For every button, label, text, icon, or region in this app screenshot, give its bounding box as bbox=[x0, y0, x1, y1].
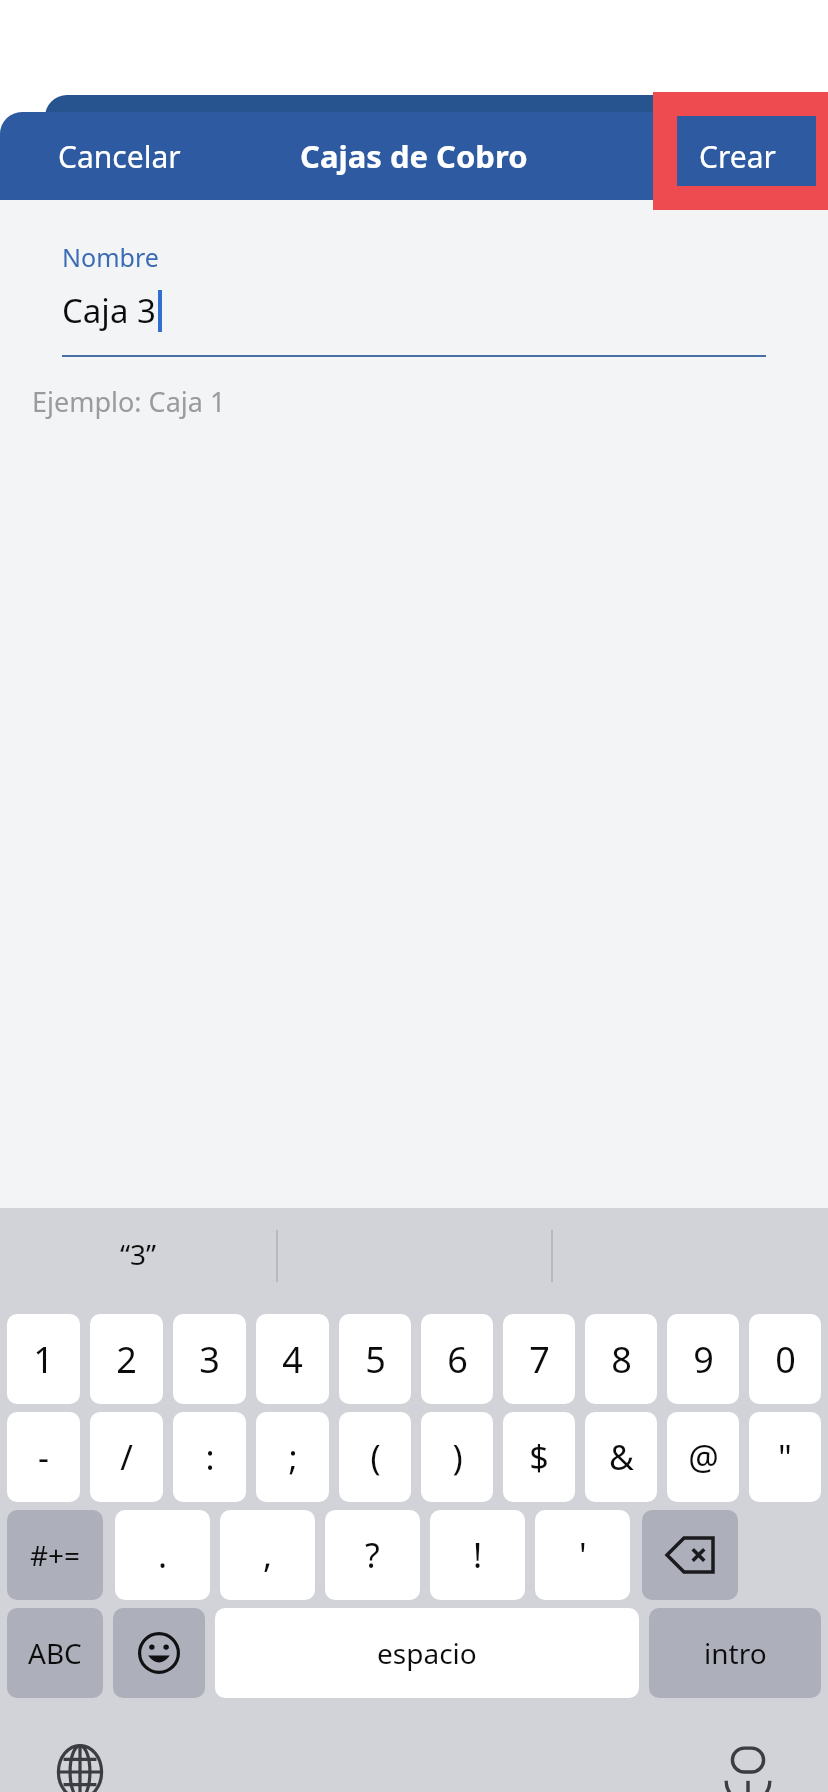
staticText: 1 bbox=[33, 1335, 54, 1384]
button[interactable]: Crear bbox=[687, 120, 788, 193]
staticText: 3 bbox=[199, 1335, 220, 1384]
staticText: 8 bbox=[611, 1335, 632, 1384]
button[interactable]: - bbox=[7, 1412, 80, 1502]
button[interactable]: 1 bbox=[7, 1314, 80, 1404]
staticText: espacio bbox=[377, 1634, 477, 1672]
button[interactable]: ( bbox=[339, 1412, 411, 1502]
button[interactable]: ' bbox=[535, 1510, 630, 1600]
button[interactable]: ) bbox=[421, 1412, 493, 1502]
button[interactable]: 2 bbox=[90, 1314, 163, 1404]
button[interactable]: $ bbox=[503, 1412, 575, 1502]
staticText: $ bbox=[529, 1434, 549, 1480]
button[interactable]: 7 bbox=[503, 1314, 575, 1404]
staticText: 5 bbox=[365, 1335, 386, 1384]
staticText: - bbox=[38, 1434, 49, 1480]
button[interactable]: 5 bbox=[339, 1314, 411, 1404]
staticText: ? bbox=[365, 1532, 380, 1578]
button[interactable]: . bbox=[115, 1510, 210, 1600]
staticText: Nombre bbox=[62, 240, 159, 274]
button[interactable]: : bbox=[173, 1412, 246, 1502]
button[interactable]: #+= bbox=[7, 1510, 103, 1600]
staticText: " bbox=[778, 1434, 792, 1480]
staticText: / bbox=[120, 1434, 133, 1480]
button[interactable]: Backspace bbox=[642, 1510, 738, 1600]
button[interactable]: 4 bbox=[256, 1314, 329, 1404]
staticText: : bbox=[205, 1434, 215, 1480]
staticText: ABC bbox=[28, 1634, 82, 1672]
staticText: 0 bbox=[775, 1335, 796, 1384]
staticText: 9 bbox=[693, 1335, 714, 1384]
button[interactable]: 9 bbox=[667, 1314, 739, 1404]
button[interactable]: espacio bbox=[215, 1608, 639, 1698]
button[interactable]: & bbox=[585, 1412, 657, 1502]
button[interactable]: Dictation bbox=[712, 1736, 784, 1792]
button[interactable]: ? bbox=[325, 1510, 420, 1600]
button[interactable]: Cancelar bbox=[20, 120, 219, 193]
button[interactable]: Emoji bbox=[113, 1608, 205, 1698]
button[interactable]: Caja 3 bbox=[62, 288, 162, 333]
staticText: . bbox=[158, 1532, 168, 1578]
button[interactable]: 8 bbox=[585, 1314, 657, 1404]
staticText: 6 bbox=[447, 1335, 468, 1384]
button[interactable]: intro bbox=[649, 1608, 821, 1698]
staticText: & bbox=[609, 1434, 634, 1480]
button[interactable]: @ bbox=[667, 1412, 739, 1502]
button[interactable]: 6 bbox=[421, 1314, 493, 1404]
button[interactable]: 0 bbox=[749, 1314, 821, 1404]
staticText: ' bbox=[579, 1532, 587, 1578]
staticText: ( bbox=[370, 1434, 381, 1480]
staticText: Crear bbox=[699, 136, 776, 177]
button[interactable]: , bbox=[220, 1510, 315, 1600]
staticText: Caja 3 bbox=[62, 288, 156, 333]
staticText: intro bbox=[704, 1634, 767, 1672]
staticText: , bbox=[263, 1532, 273, 1578]
staticText: Ejemplo: Caja 1 bbox=[32, 383, 226, 420]
staticText: 2 bbox=[116, 1335, 137, 1384]
button[interactable]: Change keyboard language bbox=[44, 1736, 116, 1792]
button[interactable]: ABC bbox=[7, 1608, 103, 1698]
button[interactable]: “3” bbox=[120, 1235, 157, 1273]
staticText: ! bbox=[473, 1532, 483, 1578]
staticText: @ bbox=[688, 1434, 719, 1480]
staticText: 7 bbox=[529, 1335, 550, 1384]
button[interactable]: " bbox=[749, 1412, 821, 1502]
button[interactable]: 3 bbox=[173, 1314, 246, 1404]
button[interactable]: / bbox=[90, 1412, 163, 1502]
staticText: ; bbox=[288, 1434, 298, 1480]
staticText: ) bbox=[452, 1434, 463, 1480]
staticText: 4 bbox=[282, 1335, 303, 1384]
staticText: Cancelar bbox=[58, 136, 181, 177]
button[interactable]: ! bbox=[430, 1510, 525, 1600]
button[interactable]: ; bbox=[256, 1412, 329, 1502]
staticText: Cajas de Cobro bbox=[300, 135, 528, 177]
staticText: #+= bbox=[30, 1536, 81, 1574]
